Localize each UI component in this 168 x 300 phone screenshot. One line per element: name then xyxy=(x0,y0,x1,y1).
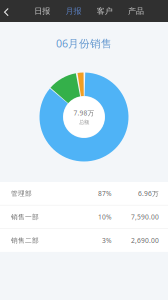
staticText: 7,590.00 xyxy=(131,212,159,221)
staticText: 总额 xyxy=(79,119,89,126)
staticText: 10% xyxy=(98,212,112,221)
staticText: 销售二部 xyxy=(11,236,39,245)
staticText: 销售一部 xyxy=(11,213,39,221)
staticText: 3% xyxy=(102,236,112,245)
button[interactable]: 产品 xyxy=(128,0,144,22)
staticText: 日报 xyxy=(34,6,50,16)
staticText: 2,690.00 xyxy=(131,236,159,245)
staticText: 6.96万 xyxy=(138,189,159,198)
button[interactable]: 销售二部 xyxy=(0,229,168,252)
staticText: 管理部 xyxy=(11,189,32,198)
staticText: 06月份销售 xyxy=(56,36,112,50)
button[interactable]: 月报 xyxy=(65,0,81,22)
button[interactable]: 日报 xyxy=(34,0,50,22)
button[interactable]: 管理部 xyxy=(0,182,168,205)
staticText: 7.98万 xyxy=(73,108,94,117)
staticText: 月报 xyxy=(65,6,81,16)
button[interactable]: Back xyxy=(0,0,13,22)
staticText: 客户 xyxy=(97,6,113,16)
button[interactable]: 销售一部 xyxy=(0,205,168,228)
button[interactable]: 客户 xyxy=(97,0,113,22)
staticText: 87% xyxy=(98,189,112,198)
staticText: 产品 xyxy=(128,6,144,16)
